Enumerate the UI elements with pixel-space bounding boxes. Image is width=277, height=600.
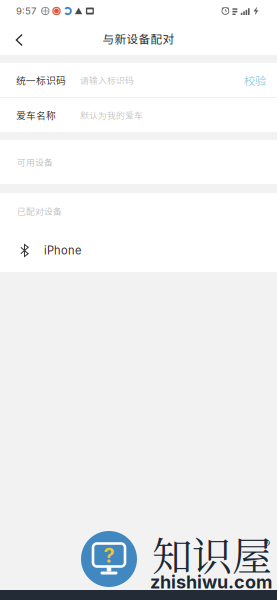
staticText: 知识屋 xyxy=(152,525,272,582)
staticText: 9:57 xyxy=(16,5,36,17)
staticText: 爱车名称 xyxy=(16,108,56,122)
staticText: 已配对设备 xyxy=(17,205,62,217)
button[interactable]: 校验 xyxy=(244,72,266,88)
staticText: 可用设备 xyxy=(17,156,53,168)
staticText: ? xyxy=(103,543,114,568)
staticText: ® xyxy=(264,538,270,549)
staticText: 请输入标识码 xyxy=(80,74,134,86)
staticText: 统一标识码 xyxy=(16,73,66,87)
staticText: 默认为我的爱车 xyxy=(80,109,143,121)
staticText: 与新设备配对 xyxy=(102,30,174,47)
staticText: 校验 xyxy=(244,72,266,88)
staticText: iPhone xyxy=(44,244,81,257)
staticText: zhishiwu.com xyxy=(150,571,272,593)
button[interactable]: iPhone xyxy=(0,229,277,272)
button[interactable]: 返回 xyxy=(0,22,35,55)
